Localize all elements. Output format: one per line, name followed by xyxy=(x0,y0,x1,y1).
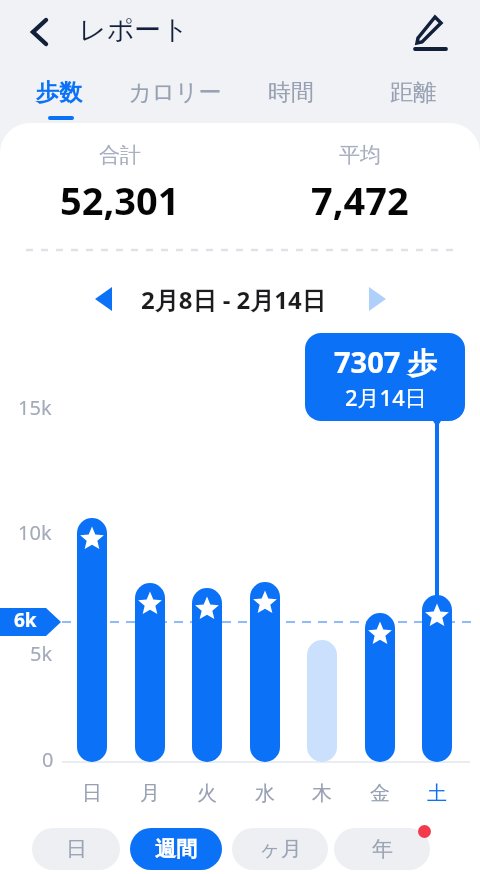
staticText: 10k xyxy=(18,519,52,546)
button[interactable]: Next week xyxy=(356,276,402,322)
button[interactable]: Back xyxy=(12,5,66,59)
staticText: 日 xyxy=(66,836,87,862)
staticText: 6k xyxy=(14,607,37,633)
staticText: 月 xyxy=(140,781,160,806)
button[interactable]: 時間 xyxy=(256,70,314,122)
button[interactable]: ヶ月 xyxy=(232,828,328,870)
staticText: 0 xyxy=(42,746,54,773)
staticText: 水 xyxy=(255,781,275,806)
button[interactable]: 歩数 xyxy=(24,70,82,122)
staticText: 土 xyxy=(427,781,447,806)
staticText: ヶ月 xyxy=(259,836,302,862)
staticText: 15k xyxy=(18,394,52,421)
staticText: 木 xyxy=(312,781,332,806)
button[interactable]: 日 xyxy=(32,828,120,870)
button[interactable]: 7307 歩 xyxy=(305,333,465,421)
staticText: 時間 xyxy=(268,78,314,107)
staticText: 5k xyxy=(30,640,53,667)
button[interactable]: Previous week xyxy=(84,276,130,322)
button[interactable]: 週間 xyxy=(130,828,222,870)
staticText: 火 xyxy=(197,781,217,806)
button[interactable]: カロリー xyxy=(116,70,222,122)
staticText: 年 xyxy=(372,836,393,862)
staticText: カロリー xyxy=(128,78,222,107)
staticText: 2月14日 xyxy=(345,382,427,412)
staticText: 2月8日 - 2月14日 xyxy=(141,283,326,316)
button[interactable]: Edit xyxy=(402,4,458,60)
staticText: 平均 xyxy=(339,142,381,168)
staticText: 距離 xyxy=(390,78,436,107)
staticText: 週間 xyxy=(155,836,197,862)
staticText: 7,472 xyxy=(311,174,409,226)
staticText: 合計 xyxy=(99,142,141,168)
staticText: 歩数 xyxy=(36,78,82,107)
staticText: 7307 歩 xyxy=(334,342,437,382)
button[interactable]: 距離 xyxy=(378,70,436,122)
staticText: 52,301 xyxy=(60,174,180,226)
staticText: 日 xyxy=(82,781,102,806)
button[interactable]: 年 xyxy=(334,828,430,870)
staticText: レポート xyxy=(79,13,189,47)
staticText: 金 xyxy=(370,781,390,806)
